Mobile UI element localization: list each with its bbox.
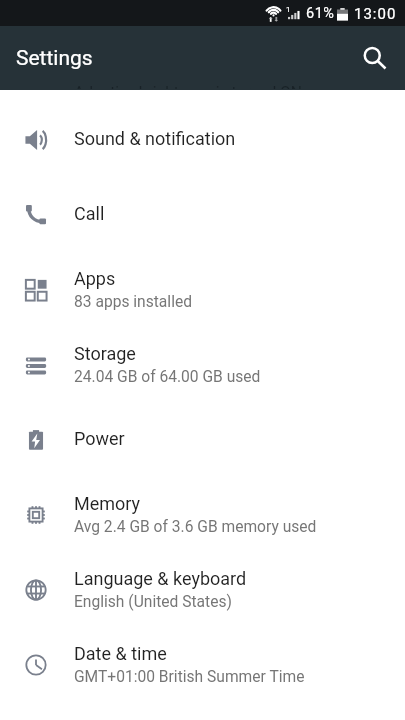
button[interactable]: Memory: [0, 477, 405, 552]
button[interactable]: Date & time: [0, 627, 405, 702]
staticText: 24.04 GB of 64.00 GB used: [74, 368, 261, 386]
button[interactable]: Apps: [0, 252, 405, 327]
staticText: 61%: [306, 5, 335, 22]
button[interactable]: Call: [0, 177, 405, 252]
staticText: Settings: [16, 46, 93, 71]
button[interactable]: Storage: [0, 327, 405, 402]
staticText: Sound & notification: [74, 128, 236, 149]
staticText: Date & time: [74, 643, 167, 664]
button[interactable]: Language & keyboard: [0, 552, 405, 627]
staticText: GMT+01:00 British Summer Time: [74, 668, 305, 686]
button[interactable]: Search: [349, 30, 405, 86]
staticText: 83 apps installed: [74, 293, 192, 311]
staticText: Avg 2.4 GB of 3.6 GB memory used: [74, 518, 317, 536]
staticText: Adaptive brightness is turned ON: [74, 85, 302, 89]
staticText: Adaptive brightness is ON: [74, 68, 254, 86]
staticText: Memory: [74, 493, 141, 514]
staticText: Display: [74, 43, 133, 64]
staticText: English (United States): [74, 593, 232, 611]
button[interactable]: Power: [0, 402, 405, 477]
button[interactable]: Sound & notification: [0, 102, 405, 177]
staticText: Language & keyboard: [74, 568, 247, 589]
staticText: Apps: [74, 268, 116, 289]
button[interactable]: Display: [0, 27, 405, 102]
staticText: 1: [286, 5, 291, 14]
staticText: Call: [74, 203, 105, 224]
staticText: 13:00: [354, 5, 397, 23]
staticText: Storage: [74, 343, 136, 364]
staticText: Power: [74, 428, 125, 449]
